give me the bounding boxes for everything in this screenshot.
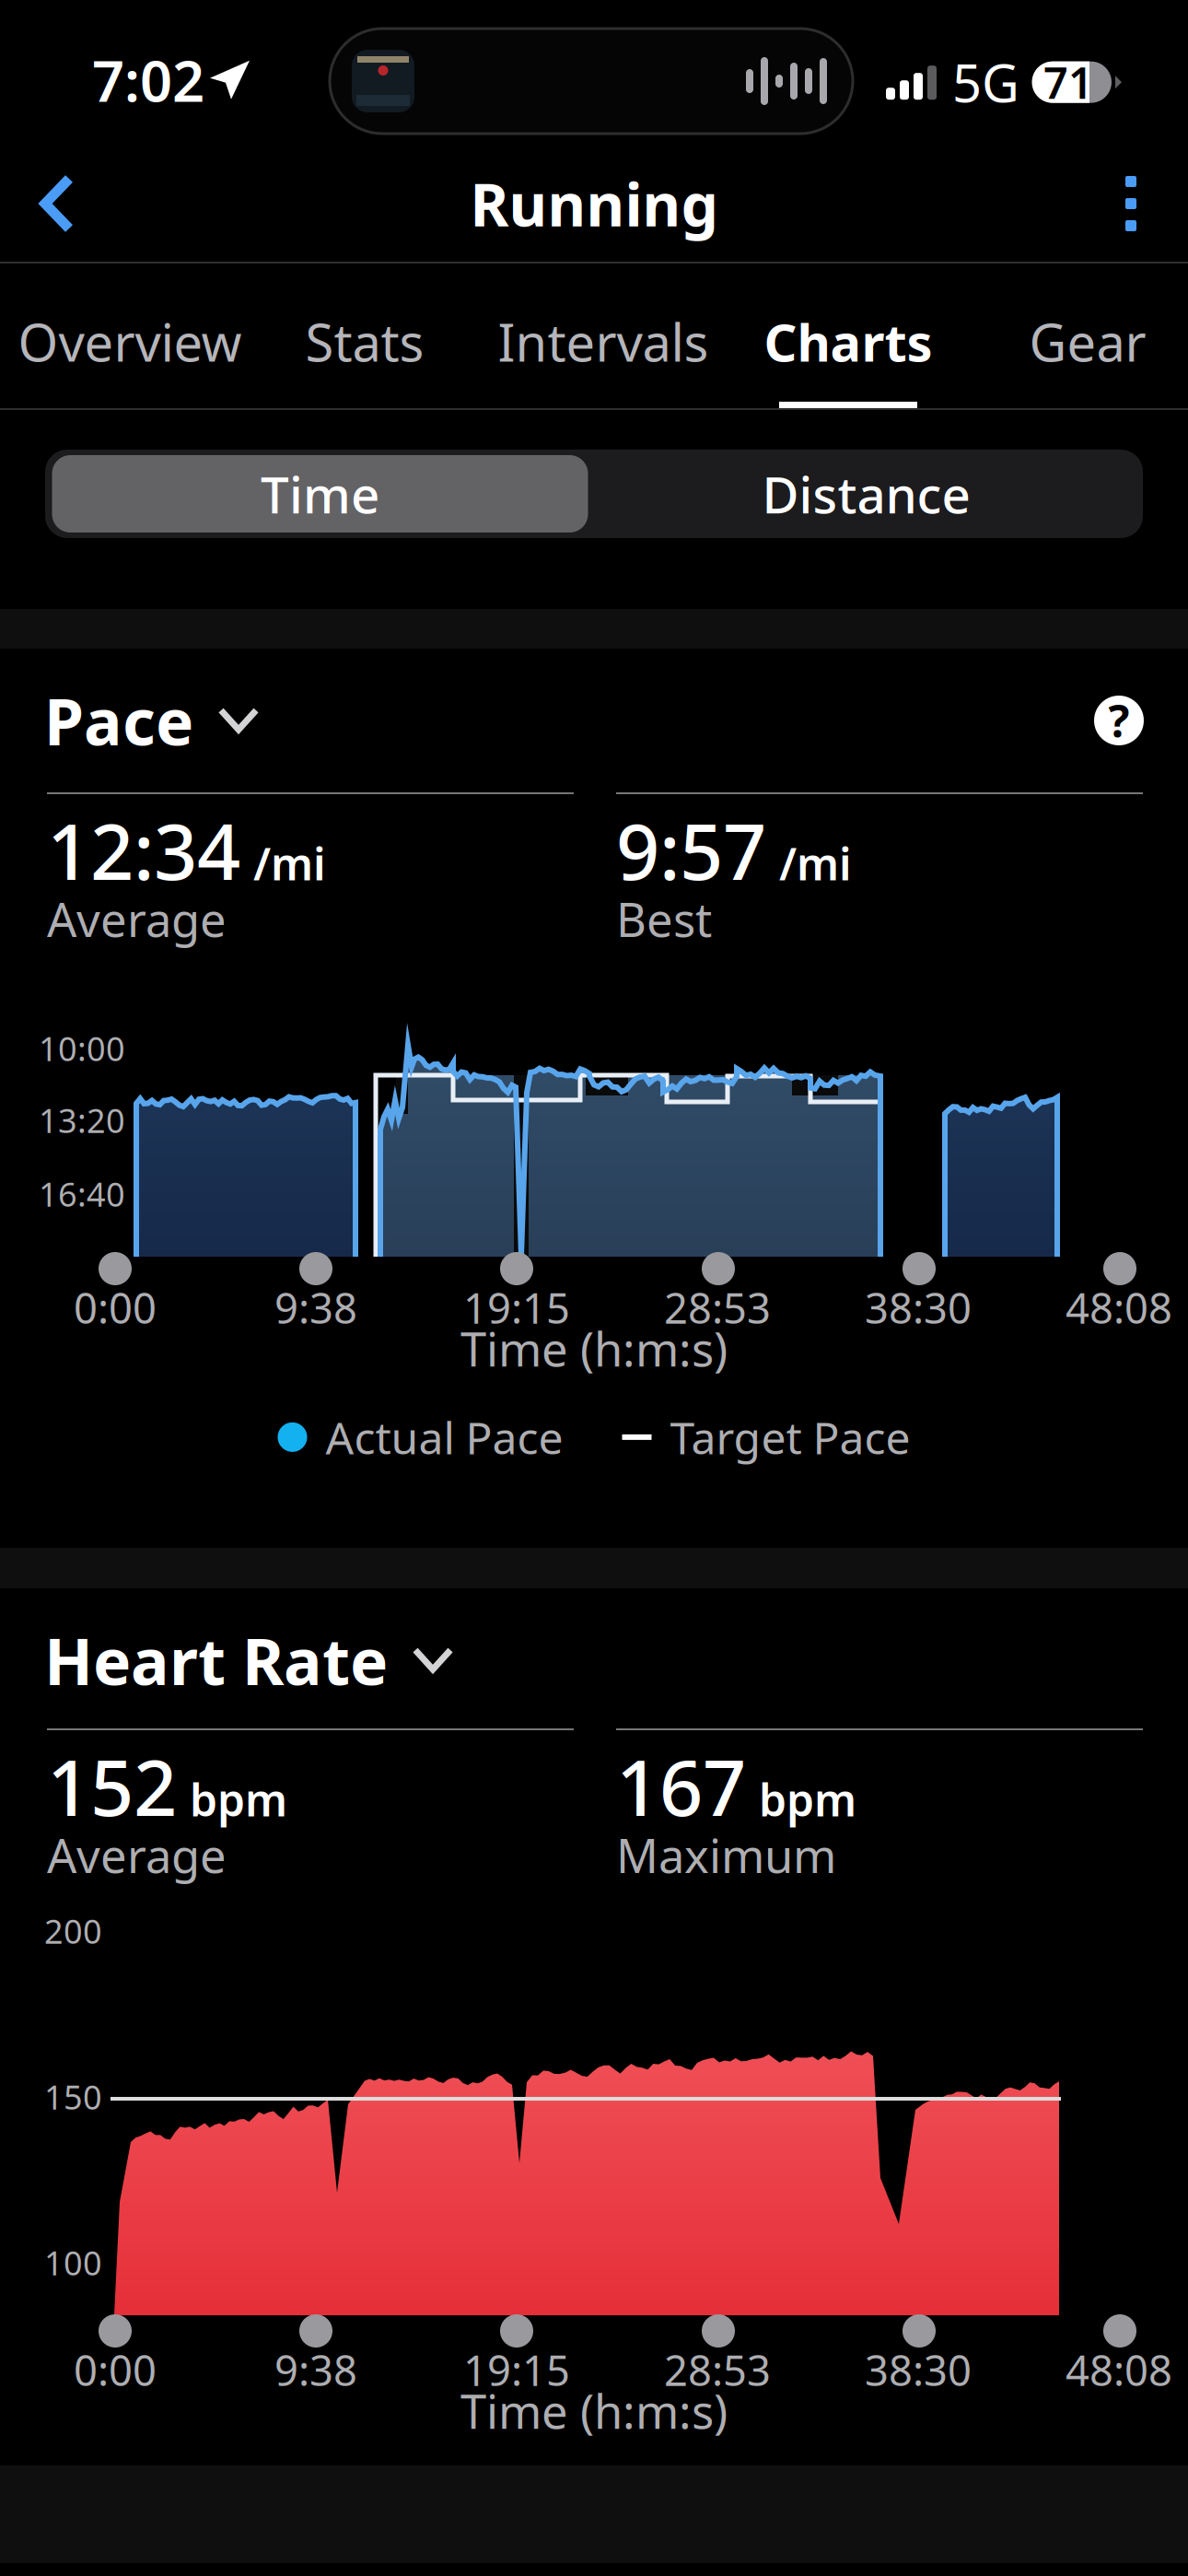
- staticText: bpm: [759, 1770, 856, 1829]
- button[interactable]: Distance: [590, 450, 1142, 538]
- staticText: 28:53: [664, 1280, 771, 1335]
- staticText: 5G: [952, 48, 1019, 116]
- button[interactable]: Help: [1090, 692, 1147, 749]
- staticText: Average: [47, 888, 227, 950]
- staticText: Distance: [762, 460, 970, 527]
- button[interactable]: Back: [0, 146, 99, 262]
- staticText: 0:00: [74, 1280, 157, 1335]
- staticText: Time (h:m:s): [460, 2380, 728, 2442]
- staticText: /mi: [253, 834, 326, 892]
- button[interactable]: Stats: [250, 263, 479, 408]
- staticText: 167: [616, 1736, 746, 1837]
- staticText: Target Pace: [670, 1408, 910, 1466]
- staticText: 19:15: [463, 2342, 570, 2397]
- staticText: 150: [44, 2075, 102, 2119]
- staticText: Time (h:m:s): [460, 1317, 728, 1379]
- staticText: Charts: [764, 307, 932, 376]
- staticText: 16:40: [39, 1172, 125, 1216]
- staticText: 28:53: [664, 2342, 771, 2397]
- button[interactable]: Heart Rate: [42, 1607, 456, 1714]
- button[interactable]: Gear: [969, 263, 1188, 408]
- staticText: 38:30: [865, 1280, 972, 1335]
- staticText: Average: [47, 1824, 227, 1886]
- staticText: 100: [44, 2241, 102, 2285]
- staticText: Actual Pace: [326, 1408, 563, 1466]
- staticText: Heart Rate: [44, 1618, 388, 1703]
- staticText: Time: [261, 460, 379, 527]
- staticText: 12:34: [47, 800, 240, 901]
- staticText: ?: [1108, 691, 1130, 750]
- staticText: Maximum: [616, 1824, 836, 1886]
- staticText: 0:00: [74, 2342, 157, 2397]
- button[interactable]: Overview: [9, 263, 250, 408]
- button[interactable]: Pace: [42, 667, 262, 774]
- staticText: 9:38: [274, 2342, 357, 2397]
- staticText: 48:08: [1066, 1280, 1172, 1335]
- button[interactable]: Time: [50, 450, 590, 538]
- button[interactable]: Intervals: [479, 263, 728, 408]
- staticText: 71: [1043, 54, 1093, 111]
- staticText: Overview: [18, 307, 242, 376]
- staticText: Running: [470, 164, 718, 243]
- staticText: bpm: [190, 1770, 287, 1829]
- staticText: 19:15: [463, 1280, 570, 1335]
- staticText: Pace: [44, 678, 193, 763]
- staticText: /mi: [779, 834, 852, 892]
- staticText: 13:20: [39, 1098, 125, 1142]
- button[interactable]: More options: [1089, 146, 1188, 262]
- button[interactable]: Charts: [728, 263, 969, 408]
- staticText: 7:02: [92, 42, 204, 117]
- staticText: 10:00: [39, 1026, 125, 1070]
- staticText: Gear: [1029, 307, 1146, 376]
- staticText: 38:30: [865, 2342, 972, 2397]
- staticText: 48:08: [1066, 2342, 1172, 2397]
- staticText: Best: [616, 888, 712, 950]
- staticText: 200: [44, 1909, 102, 1953]
- staticText: Intervals: [498, 307, 709, 376]
- staticText: 9:38: [274, 1280, 357, 1335]
- staticText: Stats: [305, 307, 424, 376]
- staticText: 152: [47, 1736, 177, 1837]
- staticText: 9:57: [616, 800, 766, 901]
